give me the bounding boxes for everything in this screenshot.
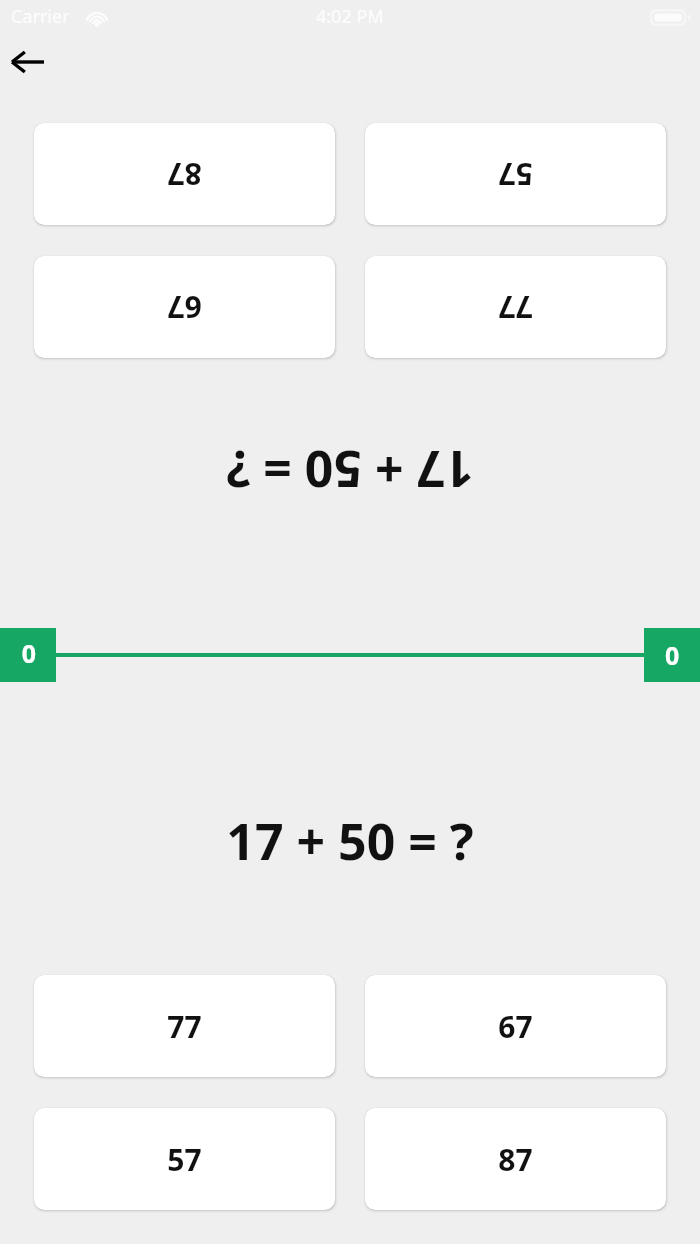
staticText: 67 <box>167 287 202 328</box>
button[interactable]: 67 <box>34 256 335 358</box>
staticText: 87 <box>167 154 202 195</box>
staticText: 0 <box>21 638 36 672</box>
staticText: 57 <box>498 154 533 195</box>
button[interactable]: 57 <box>365 123 666 225</box>
button[interactable]: 87 <box>34 123 335 225</box>
staticText: Carrier <box>11 4 70 29</box>
staticText: 17 + 50 = ? <box>226 807 474 875</box>
staticText: 57 <box>167 1139 202 1180</box>
button[interactable]: 77 <box>365 256 666 358</box>
staticText: 0 <box>665 638 680 672</box>
staticText: 4:02 PM <box>316 4 384 29</box>
button[interactable]: 0 <box>644 628 700 682</box>
button[interactable]: 87 <box>365 1108 666 1210</box>
button[interactable]: 57 <box>34 1108 335 1210</box>
button[interactable]: 67 <box>365 975 666 1077</box>
staticText: 17 + 50 = ? <box>226 436 474 504</box>
staticText: 67 <box>498 1006 533 1047</box>
staticText: 87 <box>498 1139 533 1180</box>
staticText: 77 <box>498 287 533 328</box>
button[interactable]: 0 <box>0 628 56 682</box>
button[interactable]: Back <box>0 36 56 88</box>
button[interactable]: 77 <box>34 975 335 1077</box>
staticText: 77 <box>167 1006 202 1047</box>
